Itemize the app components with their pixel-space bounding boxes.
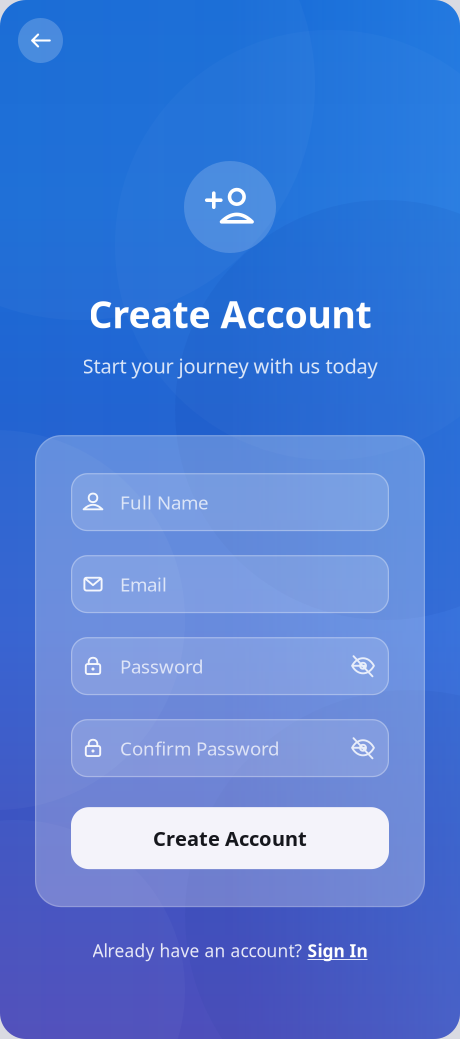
button[interactable]: Confirm Password [71, 719, 389, 777]
staticText: Email [120, 572, 167, 596]
button[interactable]: Create Account [71, 807, 389, 869]
button[interactable]: Already have an account? [92, 931, 367, 970]
staticText: Create Account [88, 289, 371, 339]
button[interactable]: Full Name [71, 473, 389, 531]
staticText: Already have an account? [92, 939, 302, 962]
button[interactable]: Back [18, 18, 63, 63]
staticText: Full Name [120, 490, 209, 514]
staticText: Create Account [153, 825, 307, 851]
staticText: Password [120, 654, 203, 678]
staticText: Start your journey with us today [82, 353, 377, 379]
button[interactable]: Email [71, 555, 389, 613]
staticText: Confirm Password [120, 736, 279, 760]
staticText: Sign In [307, 939, 367, 962]
button[interactable]: Password [71, 637, 389, 695]
